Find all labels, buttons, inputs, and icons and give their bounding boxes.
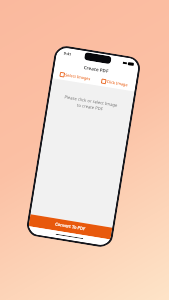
staticText: Convert To PDF <box>55 221 86 232</box>
button[interactable]: Convert To PDF <box>28 214 112 240</box>
staticText: Click Image <box>106 79 129 87</box>
staticText: 9:41 <box>63 51 72 57</box>
button[interactable]: Click Image <box>99 76 131 90</box>
staticText: Create PDF <box>83 64 110 74</box>
staticText: Select Images <box>65 72 91 81</box>
button[interactable]: Select Images <box>58 69 94 84</box>
staticText: Please click or select Image to create P… <box>61 94 119 115</box>
